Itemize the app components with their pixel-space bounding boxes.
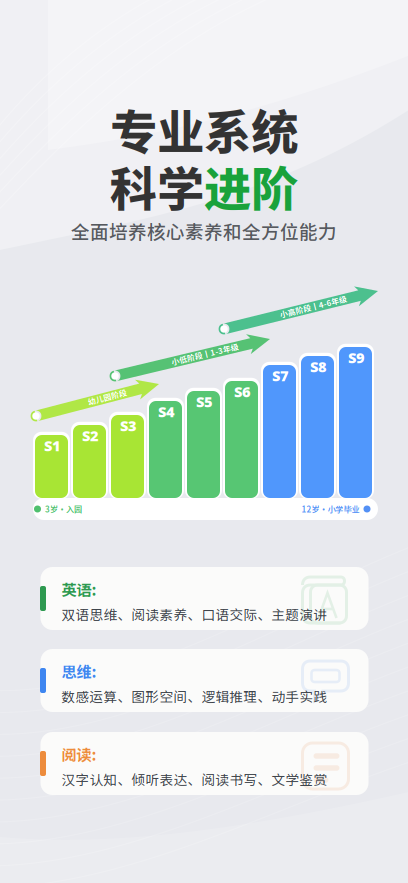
- staticText: S8: [310, 357, 327, 376]
- staticText: S1: [44, 436, 61, 455]
- staticText: 小低阶段丨1-3年级: [170, 348, 239, 360]
- staticText: 数感运算、图形空间、逻辑推理、动手实践: [61, 686, 327, 706]
- staticText: S9: [348, 348, 365, 367]
- staticText: 12岁·小学毕业: [301, 503, 359, 515]
- staticText: S3: [120, 416, 137, 435]
- staticText: 3岁·入园: [45, 503, 82, 515]
- staticText: 科学: [110, 152, 204, 220]
- staticText: 英语:: [61, 578, 96, 600]
- staticText: S4: [158, 402, 175, 421]
- staticText: 双语思维、阅读素养、口语交际、主题演讲: [61, 604, 327, 624]
- staticText: S7: [272, 366, 289, 385]
- staticText: 阅读:: [61, 743, 96, 765]
- button[interactable]: 阅读:: [40, 732, 368, 795]
- staticText: S6: [234, 382, 251, 401]
- staticText: 进阶: [204, 152, 298, 220]
- staticText: 专业系统: [110, 95, 298, 163]
- staticText: 汉字认知、倾听表达、阅读书写、文学鉴赏: [61, 769, 327, 789]
- staticText: S2: [82, 426, 99, 445]
- staticText: 幼儿园阶段: [87, 391, 127, 403]
- staticText: 全面培养核心素养和全方位能力: [71, 218, 337, 244]
- staticText: 思维:: [61, 660, 96, 682]
- staticText: 小高阶段丨4-6年级: [279, 301, 348, 312]
- button[interactable]: 英语:: [40, 567, 368, 630]
- staticText: S5: [196, 392, 213, 411]
- button[interactable]: 思维:: [40, 649, 368, 712]
